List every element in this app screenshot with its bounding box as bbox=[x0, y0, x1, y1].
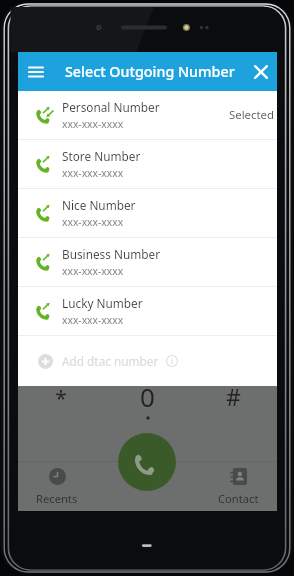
staticText: Personal Number bbox=[62, 99, 160, 115]
button[interactable]: Personal Number bbox=[18, 91, 277, 139]
staticText: xxx-xxx-xxxx bbox=[62, 264, 124, 278]
button[interactable]: 0 bbox=[111, 376, 183, 416]
staticText: xxx-xxx-xxxx bbox=[62, 117, 124, 131]
button[interactable]: Store Number bbox=[18, 140, 277, 188]
button[interactable]: Menu bbox=[25, 61, 47, 83]
button[interactable]: Add dtac number bbox=[18, 336, 277, 386]
staticText: Business Number bbox=[62, 246, 161, 262]
staticText: xxx-xxx-xxxx bbox=[62, 313, 124, 327]
staticText: Selected bbox=[229, 107, 275, 123]
button[interactable]: Nice Number bbox=[18, 189, 277, 237]
staticText: Select Outgoing Number bbox=[65, 62, 235, 81]
staticText: # bbox=[226, 381, 241, 412]
button[interactable]: * bbox=[25, 378, 97, 418]
button[interactable]: Recents bbox=[11, 461, 103, 506]
staticText: Lucky Number bbox=[62, 295, 143, 311]
staticText: xxx-xxx-xxxx bbox=[62, 166, 124, 180]
staticText: * bbox=[55, 384, 67, 413]
staticText: Store Number bbox=[62, 148, 141, 164]
staticText: Contact bbox=[218, 491, 259, 506]
button[interactable]: # bbox=[197, 376, 269, 416]
staticText: Nice Number bbox=[62, 197, 136, 213]
button[interactable]: Contact bbox=[192, 461, 284, 506]
button[interactable]: Close bbox=[250, 61, 272, 83]
staticText: 0 bbox=[140, 379, 155, 414]
staticText: xxx-xxx-xxxx bbox=[62, 215, 124, 229]
staticText: Recents bbox=[36, 491, 78, 506]
staticText: Add dtac number bbox=[62, 353, 159, 369]
button[interactable]: Lucky Number bbox=[18, 287, 277, 335]
button[interactable]: Call bbox=[118, 433, 176, 491]
button[interactable]: Business Number bbox=[18, 238, 277, 286]
